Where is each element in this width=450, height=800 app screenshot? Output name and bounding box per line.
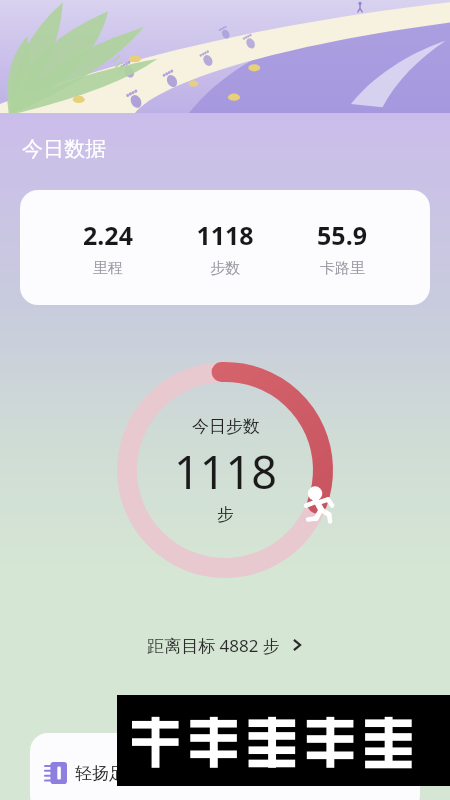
button[interactable]: Notebook: [30, 733, 420, 800]
button[interactable]: 2.24: [20, 190, 430, 305]
staticText: 今日步数: [192, 416, 260, 437]
staticText: 步数: [210, 259, 240, 278]
staticText: 55.9: [317, 218, 367, 252]
staticText: 距离目标 4882 步: [147, 634, 280, 657]
other: Notebook: [45, 762, 67, 784]
button[interactable]: 今日步数: [117, 362, 333, 578]
staticText: 今日数据: [22, 136, 106, 162]
staticText: 1118: [196, 218, 254, 252]
staticText: 2.24: [83, 218, 133, 252]
button[interactable]: 距离目标 4882 步: [0, 628, 450, 662]
staticText: 卡路里: [320, 259, 365, 278]
staticText: 步: [217, 504, 234, 525]
staticText: 1118: [174, 441, 277, 502]
staticText: 里程: [93, 259, 123, 278]
staticText: 轻扬足迹: [75, 763, 143, 784]
